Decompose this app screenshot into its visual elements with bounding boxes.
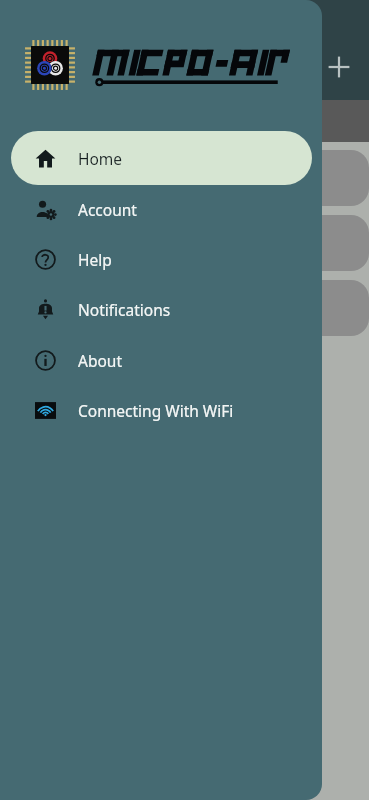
button[interactable]: Notifications [11, 288, 312, 330]
button[interactable] [300, 280, 369, 336]
button[interactable] [300, 150, 369, 206]
staticText: Home [78, 148, 123, 169]
button[interactable]: Help [11, 238, 312, 280]
staticText: Notifications [78, 299, 171, 320]
button[interactable]: Account [11, 188, 312, 230]
button[interactable]: Home [11, 131, 312, 185]
button[interactable]: Connecting With WiFi [11, 389, 312, 431]
button[interactable]: Add [326, 54, 352, 80]
staticText: Connecting With WiFi [78, 400, 234, 421]
staticText: Help [78, 249, 112, 270]
staticText: Account [78, 199, 137, 220]
button[interactable]: About [11, 339, 312, 381]
staticText: About [78, 350, 122, 371]
button[interactable] [300, 215, 369, 271]
